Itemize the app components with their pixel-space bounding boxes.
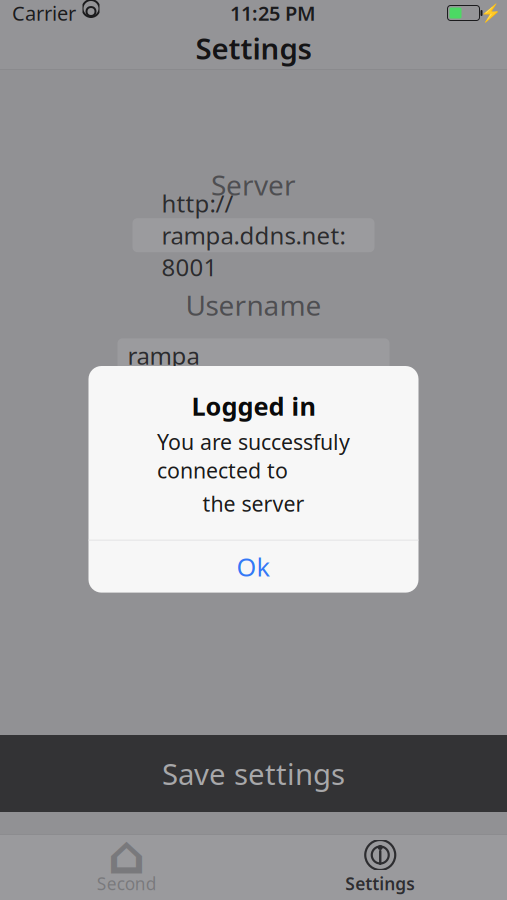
staticText: ⌂ [108, 825, 146, 885]
staticText: Logged in [191, 389, 315, 423]
button[interactable]: Ok [88, 541, 418, 593]
button[interactable]: Settings [253, 835, 507, 899]
staticText: Ok [236, 550, 270, 583]
staticText: Settings [345, 872, 415, 895]
staticText: Settings [195, 28, 311, 67]
button[interactable]: Save settings [0, 735, 507, 812]
staticText: You are successfuly connected to [157, 428, 350, 484]
staticText: rampa [127, 339, 199, 371]
staticText: Username [185, 286, 321, 323]
staticText: Second [97, 872, 157, 895]
staticText: ⚡ [480, 3, 502, 23]
button[interactable]: ⌂ [0, 835, 253, 899]
staticText: the server [202, 489, 304, 518]
staticText: Save settings [162, 754, 345, 793]
button[interactable]: rampa [117, 338, 389, 372]
staticText: http://rampa.ddns.net:8001 [161, 187, 345, 283]
staticText: 11:25 PM [230, 0, 316, 26]
button[interactable]: http://rampa.ddns.net:8001 [132, 218, 374, 252]
staticText: Carrier [12, 0, 76, 26]
staticText: Server [211, 166, 296, 203]
